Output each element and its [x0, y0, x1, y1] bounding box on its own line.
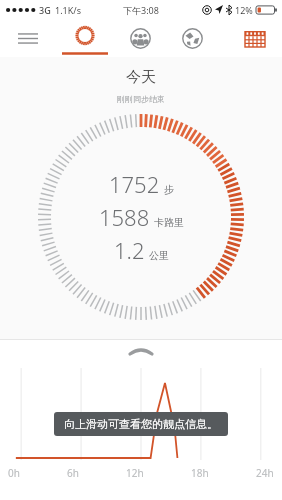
button[interactable]: Calendar — [228, 19, 282, 57]
staticText: 12% — [235, 4, 253, 16]
button[interactable]: Menu — [0, 19, 56, 57]
staticText: 卡路里 — [154, 216, 184, 229]
staticText: 下午3:08 — [123, 4, 159, 16]
staticText: 3G — [39, 4, 51, 16]
staticText: 18h — [191, 466, 209, 480]
staticText: 公里 — [149, 249, 169, 262]
staticText: 1.2 — [114, 235, 145, 265]
staticText: 今天 — [126, 68, 156, 87]
staticText: 24h — [256, 466, 274, 480]
staticText: 1752 — [109, 169, 160, 199]
button[interactable]: 向上滑动可查看您的靓点信息。 — [54, 412, 228, 436]
staticText: 向上滑动可查看您的靓点信息。 — [64, 417, 218, 431]
staticText: 6h — [67, 466, 79, 480]
staticText: 1.1K/s — [55, 4, 81, 16]
staticText: 12h — [126, 466, 144, 480]
button[interactable]: Explore — [166, 19, 218, 57]
staticText: 1588 — [99, 202, 150, 232]
staticText: 刚刚同步结束 — [117, 94, 165, 104]
button[interactable]: Friends — [114, 19, 166, 57]
staticText: 步 — [164, 183, 174, 196]
staticText: 0h — [8, 466, 20, 480]
button[interactable]: Activity — [56, 19, 114, 57]
